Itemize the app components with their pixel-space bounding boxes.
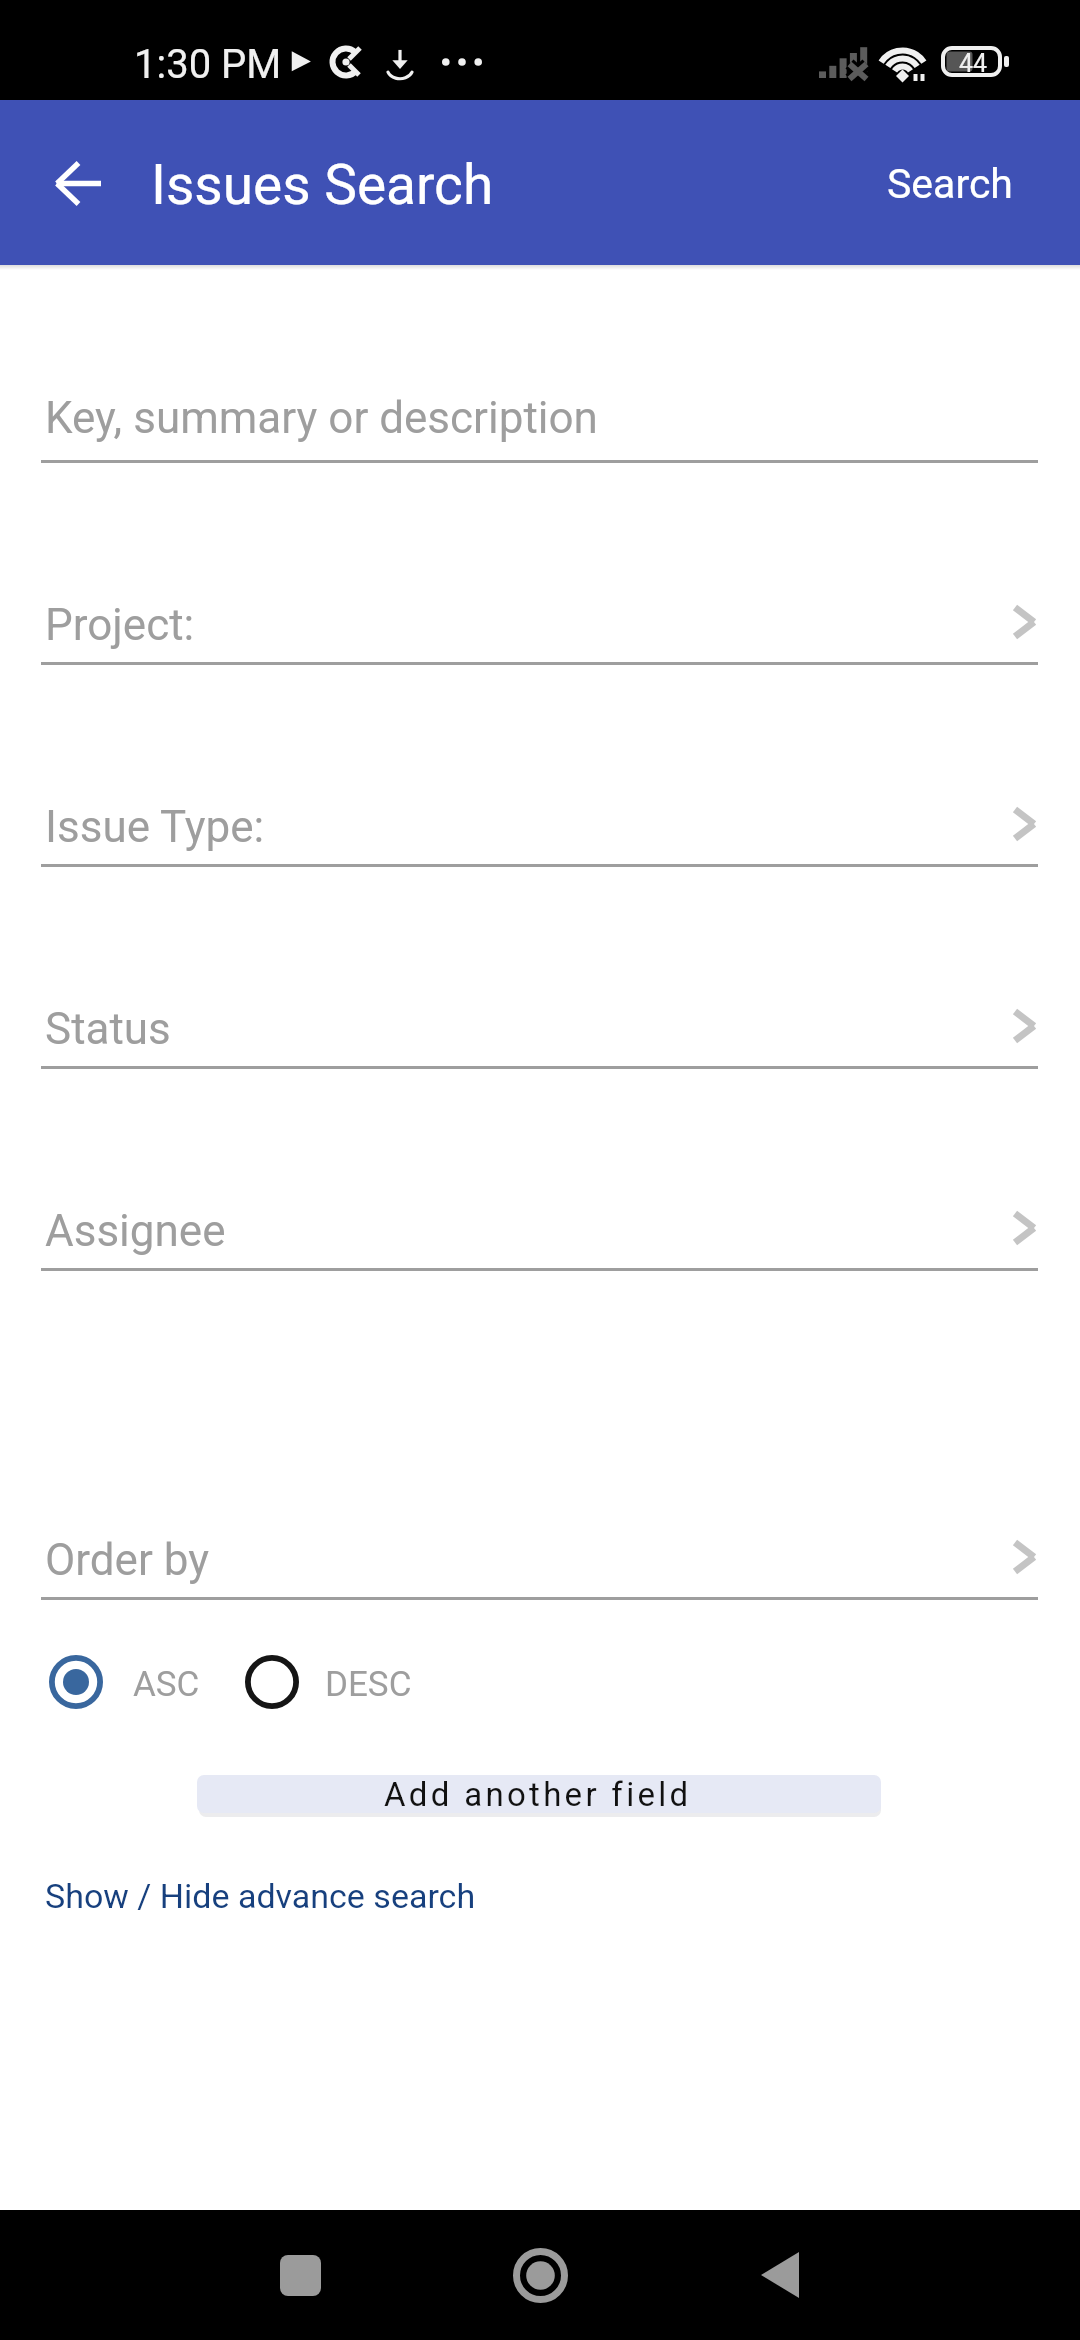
button[interactable]: DESC: [245, 1655, 412, 1709]
staticText: Search: [887, 160, 1013, 208]
button[interactable]: Home: [480, 2215, 600, 2335]
button[interactable]: Issue Type:: [0, 782, 1080, 867]
staticText: Add another field: [384, 1775, 692, 1813]
staticText: Project:: [45, 599, 195, 651]
staticText: Status: [45, 1003, 171, 1055]
button[interactable]: Key, summary or description: [0, 378, 1080, 463]
staticText: Key, summary or description: [45, 392, 598, 444]
button[interactable]: Back: [720, 2215, 840, 2335]
button[interactable]: Status: [0, 984, 1080, 1069]
staticText: DESC: [325, 1664, 412, 1705]
staticText: 1:30 PM: [134, 41, 282, 88]
button[interactable]: Show / Hide advance search: [21, 1862, 502, 1930]
staticText: Order by: [45, 1534, 210, 1586]
button[interactable]: Project:: [0, 580, 1080, 665]
button[interactable]: Order by: [0, 1515, 1080, 1600]
staticText: Assignee: [45, 1205, 226, 1257]
button[interactable]: Recent apps: [240, 2215, 360, 2335]
button[interactable]: Add another field: [197, 1775, 881, 1813]
staticText: ASC: [133, 1664, 200, 1705]
staticText: Issue Type:: [45, 801, 265, 853]
button[interactable]: Search: [857, 134, 1080, 234]
button[interactable]: Navigate up: [22, 127, 134, 239]
button[interactable]: Assignee: [0, 1186, 1080, 1271]
button[interactable]: ASC: [0, 1655, 200, 1709]
staticText: 44: [959, 49, 988, 78]
staticText: Issues Search: [151, 153, 494, 217]
staticText: Show / Hide advance search: [45, 1876, 476, 1916]
